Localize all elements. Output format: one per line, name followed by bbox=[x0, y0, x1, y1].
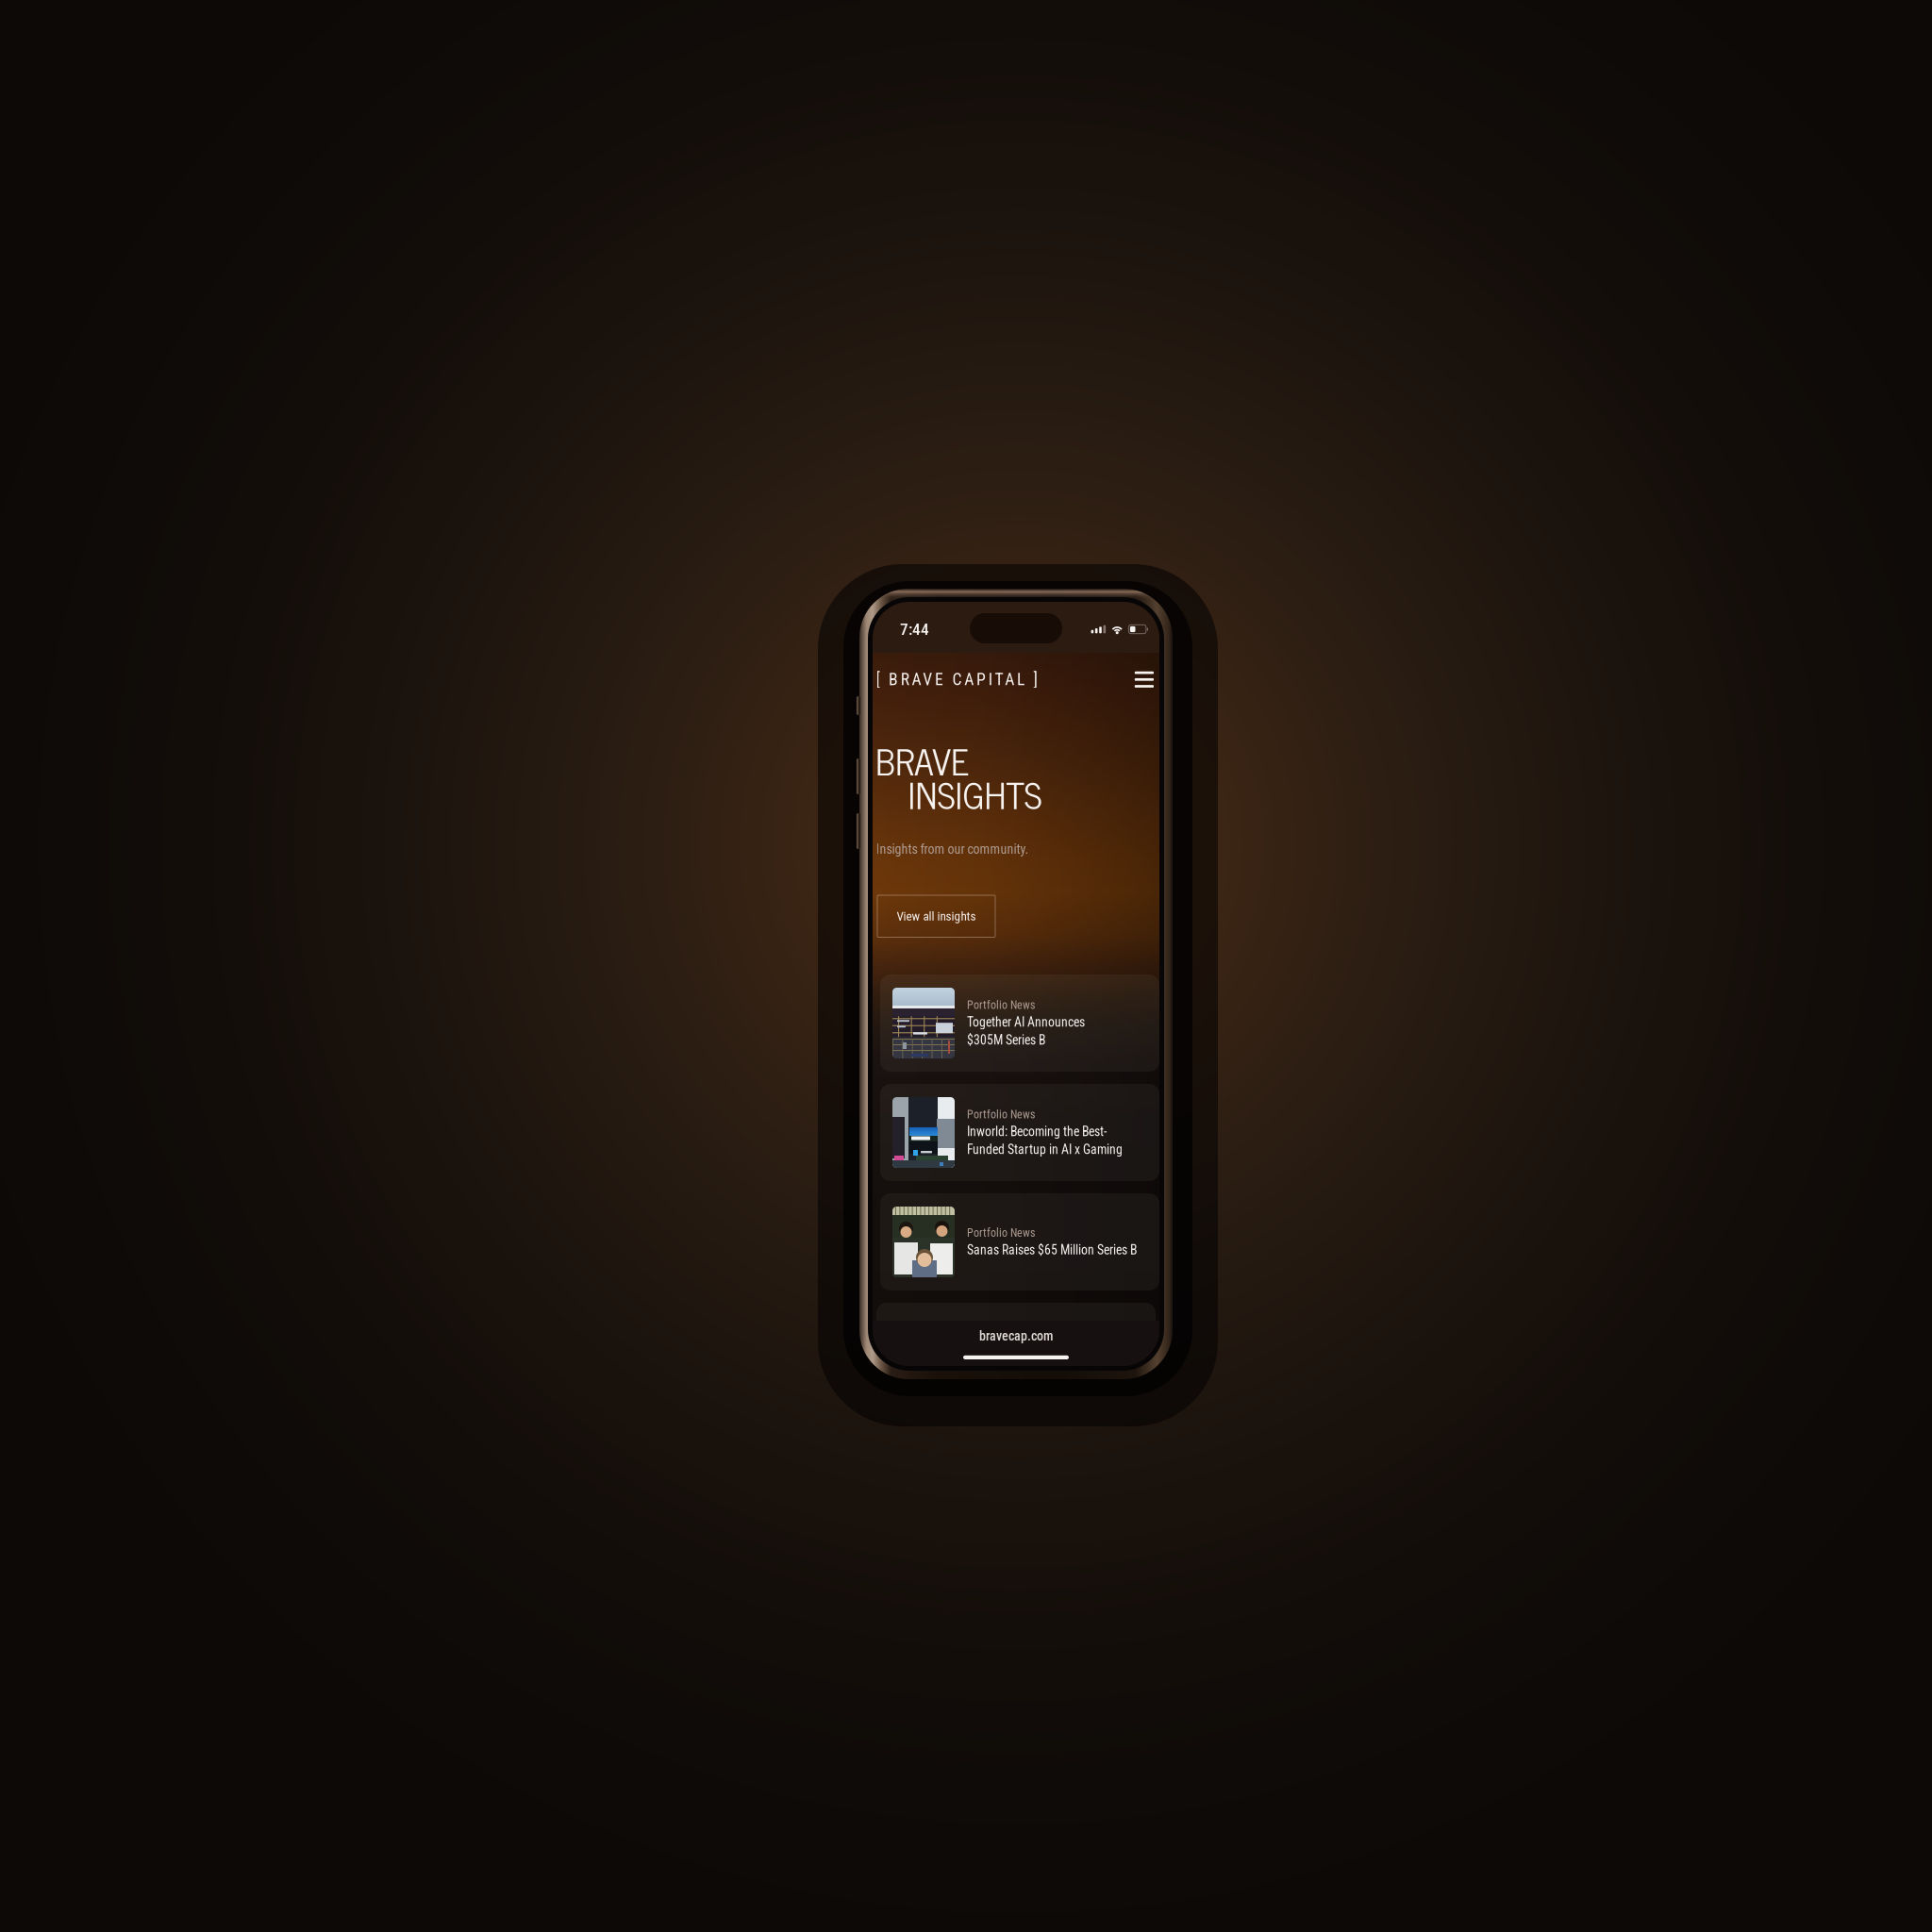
button[interactable]: Portfolio News bbox=[880, 974, 1159, 1072]
button[interactable]: bravecap.com bbox=[979, 1328, 1053, 1344]
staticText: Inworld: Becoming the Best- bbox=[967, 1124, 1107, 1139]
staticText: Portfolio News bbox=[967, 1108, 1035, 1121]
staticText: Portfolio News bbox=[967, 1226, 1035, 1240]
staticText: View all insights bbox=[897, 909, 976, 924]
staticText: Together AI Announces bbox=[967, 1014, 1085, 1030]
staticText: Portfolio News bbox=[967, 998, 1035, 1012]
button[interactable]: View all insights bbox=[877, 895, 995, 937]
staticText: bravecap.com bbox=[979, 1328, 1053, 1344]
staticText: [ BRAVE CAPITAL ] bbox=[876, 670, 1037, 689]
button[interactable]: Portfolio News bbox=[880, 1193, 1159, 1291]
staticText: $305M Series B bbox=[967, 1033, 1045, 1048]
staticText: INSIGHTS bbox=[908, 765, 1042, 823]
staticText: Sanas Raises $65 Million Series B bbox=[967, 1242, 1137, 1258]
staticText: Funded Startup in AI x Gaming bbox=[967, 1142, 1123, 1157]
button[interactable]: [ BRAVE CAPITAL ] bbox=[876, 662, 1037, 697]
button[interactable]: Open navigation menu bbox=[1132, 666, 1157, 693]
button[interactable]: Portfolio News bbox=[880, 1084, 1159, 1181]
staticText: Insights from our community. bbox=[876, 841, 1029, 857]
staticText: 7:44 bbox=[900, 620, 929, 639]
staticText: BRAVE bbox=[875, 731, 969, 789]
